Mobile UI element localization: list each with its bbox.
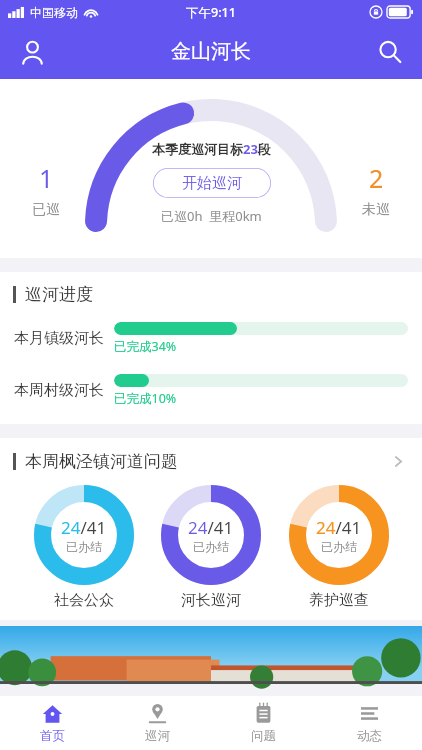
staticText: 1 xyxy=(39,161,54,195)
staticText: 24/41 xyxy=(61,516,107,539)
staticText: 已完成10% xyxy=(114,390,177,407)
staticText: 已完成34% xyxy=(114,338,177,355)
staticText: 24/41 xyxy=(316,516,362,539)
staticText: 本季度巡河目标23段 xyxy=(152,140,271,158)
button[interactable]: 问题 xyxy=(210,696,316,750)
button[interactable]: Profile xyxy=(10,30,54,74)
staticText: 已巡0h 里程0km xyxy=(161,207,262,225)
staticText: 社会公众 xyxy=(54,591,114,610)
staticText: 本周村级河长 xyxy=(14,381,104,400)
staticText: 2 xyxy=(369,161,384,195)
staticText: 动态 xyxy=(357,728,382,744)
staticText: 本月镇级河长 xyxy=(14,329,104,348)
staticText: 已办结 xyxy=(193,539,229,554)
staticText: 养护巡查 xyxy=(309,591,369,610)
staticText: 开始巡河 xyxy=(182,174,242,193)
staticText: 已办结 xyxy=(66,539,102,554)
button[interactable]: 24/41 xyxy=(161,485,261,610)
staticText: 已办结 xyxy=(321,539,357,554)
staticText: 未巡 xyxy=(362,201,390,219)
button[interactable]: 巡河 xyxy=(105,696,210,750)
staticText: 巡河 xyxy=(145,728,170,744)
staticText: 中国移动 xyxy=(30,5,78,20)
button[interactable]: 首页 xyxy=(0,696,105,750)
button[interactable]: 动态 xyxy=(316,696,422,750)
button[interactable]: 24/41 xyxy=(289,485,389,610)
staticText: 已巡 xyxy=(32,201,60,219)
staticText: 首页 xyxy=(40,728,65,744)
staticText: 下午9:11 xyxy=(186,4,236,21)
staticText: 24/41 xyxy=(188,516,234,539)
staticText: 金山河长 xyxy=(171,39,251,64)
button[interactable]: Search xyxy=(368,30,412,74)
staticText: 问题 xyxy=(251,728,276,744)
button[interactable] xyxy=(0,626,422,684)
staticText: 本周枫泾镇河道问题 xyxy=(25,451,178,472)
button[interactable]: 开始巡河 xyxy=(153,168,271,198)
button[interactable]: 24/41 xyxy=(34,485,134,610)
staticText: 巡河进度 xyxy=(25,284,93,305)
staticText: 河长巡河 xyxy=(181,591,241,610)
